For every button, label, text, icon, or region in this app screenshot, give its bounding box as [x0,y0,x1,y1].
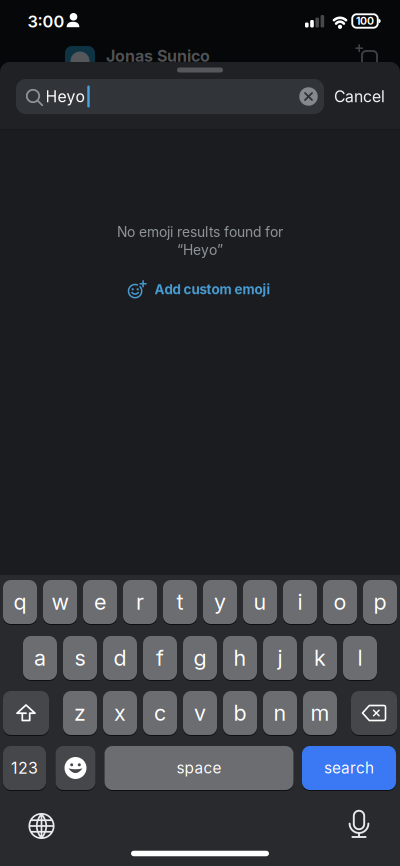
button[interactable]: Search [302,746,396,790]
staticText: r [136,589,144,615]
staticText: e [94,589,106,615]
button[interactable]: n [263,691,297,735]
staticText: u [253,589,266,615]
staticText: j [277,645,282,671]
button[interactable]: x [103,691,137,735]
button[interactable]: i [283,580,317,624]
button[interactable]: Add custom emoji [127,280,270,298]
button[interactable]: b [223,691,257,735]
staticText: 123 [11,758,38,778]
staticText: Heyo [45,87,84,106]
button[interactable]: k [303,636,337,680]
staticText: s [74,645,85,671]
staticText: g [193,645,206,671]
staticText: space [176,759,221,777]
button[interactable]: a [23,636,57,680]
staticText: 3:00 [27,12,64,31]
staticText: No emoji results found for [117,224,283,240]
button[interactable]: Back [21,44,41,68]
button[interactable]: t [163,580,197,624]
button[interactable]: g [183,636,217,680]
button[interactable]: v [183,691,217,735]
staticText: k [314,645,326,671]
staticText: v [194,700,206,726]
staticText: p [373,589,386,615]
staticText: search [324,759,374,777]
staticText: Jonas Sunico [106,46,210,66]
button[interactable]: e [83,580,117,624]
staticText: l [357,645,362,671]
staticText: b [233,700,246,726]
staticText: i [297,589,302,615]
button[interactable]: u [243,580,277,624]
button[interactable]: z [63,691,97,735]
button[interactable]: c [143,691,177,735]
button[interactable]: o [323,580,357,624]
button[interactable]: r [123,580,157,624]
staticText: t [176,589,183,615]
button[interactable]: y [203,580,237,624]
staticText: d [113,645,126,671]
button[interactable]: l [343,636,377,680]
button[interactable]: q [3,580,37,624]
staticText: x [114,700,126,726]
button[interactable]: Dictate [348,810,370,840]
button[interactable]: Numbers [3,746,46,790]
button[interactable]: d [103,636,137,680]
button[interactable]: m [303,691,337,735]
button[interactable]: Delete [351,691,397,735]
staticText: 100 [356,15,374,27]
button[interactable]: Emoji [55,746,95,790]
staticText: c [154,700,166,726]
button[interactable]: w [43,580,77,624]
button[interactable]: p [363,580,397,624]
staticText: q [13,589,26,615]
staticText: m [310,700,329,726]
button[interactable]: Next keyboard [27,812,55,840]
button[interactable]: s [63,636,97,680]
button[interactable]: Add people [356,45,378,67]
button[interactable]: Space [104,746,293,790]
staticText: w [51,589,68,615]
staticText: a [34,645,46,671]
staticText: n [273,700,286,726]
staticText: Cancel [334,87,385,106]
staticText: o [333,589,346,615]
staticText: Add custom emoji [154,281,270,297]
button[interactable]: h [223,636,257,680]
button[interactable]: Cancel [334,87,385,106]
staticText: y [214,589,226,615]
button[interactable]: j [263,636,297,680]
staticText: h [233,645,246,671]
staticText: f [156,645,164,671]
button[interactable]: Clear search [299,87,318,106]
staticText: z [74,700,86,726]
staticText: “Heyo” [177,242,223,258]
button[interactable]: f [143,636,177,680]
button[interactable]: Shift [3,691,49,735]
